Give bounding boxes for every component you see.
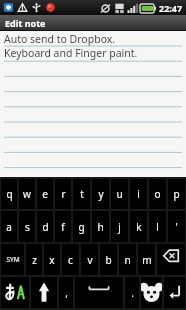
- button[interactable]: q: [1, 179, 17, 209]
- staticText: ': [175, 220, 178, 234]
- staticText: l: [156, 220, 159, 234]
- button[interactable]: p: [168, 179, 185, 209]
- button[interactable]: Emoji: [141, 277, 162, 308]
- staticText: u: [116, 187, 123, 201]
- staticText: e: [42, 187, 48, 201]
- button[interactable]: ': [168, 211, 185, 242]
- button[interactable]: .: [125, 277, 139, 308]
- staticText: m: [142, 253, 152, 267]
- button[interactable]: Space: [75, 277, 123, 308]
- staticText: r: [61, 187, 66, 201]
- button[interactable]: Enter: [164, 277, 185, 308]
- staticText: ,: [65, 286, 68, 300]
- button[interactable]: a: [1, 211, 17, 242]
- button[interactable]: u: [111, 179, 128, 209]
- staticText: j: [118, 220, 121, 234]
- button[interactable]: c: [62, 244, 79, 275]
- button[interactable]: Delete: [157, 244, 185, 275]
- staticText: g: [78, 220, 85, 234]
- staticText: q: [6, 187, 13, 201]
- staticText: w: [23, 187, 31, 201]
- staticText: .: [131, 286, 134, 300]
- button[interactable]: k: [130, 211, 147, 242]
- button[interactable]: Change language: [1, 277, 29, 308]
- button[interactable]: d: [37, 211, 53, 242]
- button[interactable]: r: [55, 179, 71, 209]
- button[interactable]: y: [92, 179, 109, 209]
- button[interactable]: Shift: [31, 277, 57, 308]
- button[interactable]: i: [130, 179, 147, 209]
- button[interactable]: l: [149, 211, 166, 242]
- staticText: c: [68, 253, 73, 267]
- staticText: h: [97, 220, 104, 234]
- staticText: t: [80, 187, 84, 201]
- staticText: k: [136, 220, 142, 234]
- staticText: x: [49, 253, 55, 267]
- staticText: Edit note: [5, 17, 46, 29]
- staticText: f: [61, 220, 65, 234]
- staticText: p: [173, 187, 180, 201]
- button[interactable]: v: [81, 244, 98, 275]
- button[interactable]: Auto send to Dropbox.: [0, 31, 186, 177]
- staticText: n: [124, 253, 131, 267]
- button[interactable]: x: [44, 244, 60, 275]
- staticText: z: [32, 253, 37, 267]
- button[interactable]: ,: [59, 277, 73, 308]
- staticText: b: [105, 253, 112, 267]
- staticText: y: [98, 187, 104, 201]
- staticText: v: [87, 253, 93, 267]
- button[interactable]: z: [26, 244, 42, 275]
- button[interactable]: b: [100, 244, 117, 275]
- staticText: 22:47: [159, 2, 183, 14]
- staticText: a: [6, 220, 12, 234]
- staticText: s: [25, 220, 30, 234]
- staticText: Auto send to Dropbox.: [4, 32, 116, 46]
- button[interactable]: w: [19, 179, 35, 209]
- staticText: Keyboard and Finger paint.: [4, 46, 138, 60]
- button[interactable]: h: [92, 211, 109, 242]
- button[interactable]: SYM: [1, 244, 24, 275]
- button[interactable]: f: [55, 211, 71, 242]
- button[interactable]: s: [19, 211, 35, 242]
- button[interactable]: m: [138, 244, 155, 275]
- staticText: d: [42, 220, 49, 234]
- button[interactable]: t: [73, 179, 90, 209]
- button[interactable]: o: [149, 179, 166, 209]
- button[interactable]: j: [111, 211, 128, 242]
- button[interactable]: e: [37, 179, 53, 209]
- button[interactable]: g: [73, 211, 90, 242]
- staticText: o: [154, 187, 161, 201]
- staticText: SYM: [6, 255, 20, 264]
- staticText: i: [137, 187, 140, 201]
- button[interactable]: n: [119, 244, 136, 275]
